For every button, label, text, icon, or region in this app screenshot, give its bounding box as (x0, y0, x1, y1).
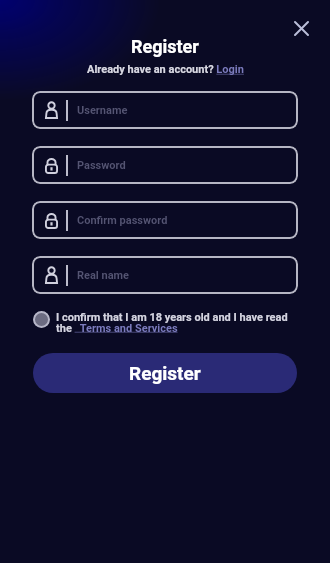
staticText: Real name (77, 269, 130, 282)
button[interactable]: Register (33, 353, 297, 393)
button[interactable]: I confirm that I am 18 years old and I h… (32, 311, 298, 334)
staticText: Already have an account? Login (87, 63, 244, 76)
button[interactable]: Password (32, 146, 298, 184)
button[interactable]: Real name (32, 256, 298, 294)
staticText: Register (129, 362, 201, 384)
staticText: Register (131, 36, 199, 57)
staticText: Username (77, 104, 128, 117)
staticText: Confirm password (77, 214, 168, 227)
staticText: Password (77, 159, 126, 172)
button[interactable]: Confirm password (32, 201, 298, 239)
staticText: I confirm that I am 18 years old and I h… (56, 311, 298, 334)
button[interactable]: Close (286, 13, 316, 43)
button[interactable]: Username (32, 91, 298, 129)
